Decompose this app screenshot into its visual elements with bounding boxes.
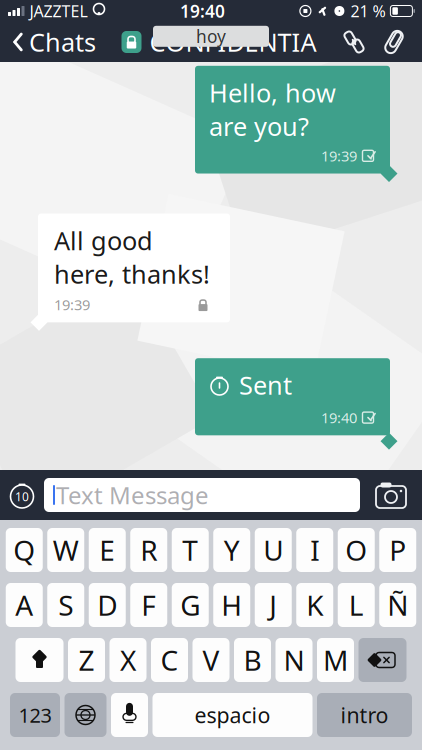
- button[interactable]: M: [317, 638, 354, 682]
- staticText: 19:39: [321, 146, 357, 166]
- staticText: S: [58, 586, 73, 624]
- staticText: 19:39: [54, 295, 90, 314]
- button[interactable]: Text Message: [44, 478, 360, 512]
- button[interactable]: Delete: [358, 638, 406, 682]
- button[interactable]: A: [6, 583, 43, 627]
- button[interactable]: V: [192, 638, 229, 682]
- button[interactable]: F: [130, 583, 167, 627]
- staticText: N: [283, 641, 304, 679]
- button[interactable]: O: [338, 528, 375, 572]
- button[interactable]: U: [255, 528, 292, 572]
- button[interactable]: K: [296, 583, 333, 627]
- staticText: Sent: [239, 368, 292, 402]
- staticText: JAZZTEL: [29, 0, 87, 22]
- staticText: P: [389, 531, 406, 569]
- staticText: B: [243, 641, 261, 679]
- button[interactable]: intro: [317, 693, 412, 737]
- staticText: X: [120, 641, 136, 679]
- staticText: L: [349, 586, 364, 624]
- button[interactable]: Y: [213, 528, 250, 572]
- button[interactable]: E: [89, 528, 126, 572]
- button[interactable]: J: [255, 583, 292, 627]
- staticText: D: [97, 586, 117, 624]
- staticText: O: [345, 531, 367, 569]
- staticText: 123: [18, 702, 51, 728]
- button[interactable]: G: [172, 583, 209, 627]
- staticText: 10: [15, 488, 29, 504]
- button[interactable]: R: [130, 528, 167, 572]
- button[interactable]: B: [234, 638, 271, 682]
- button[interactable]: Q: [6, 528, 43, 572]
- button[interactable]: N: [275, 638, 312, 682]
- staticText: intro: [340, 701, 388, 729]
- staticText: CONFIDENTIA: [149, 25, 316, 59]
- staticText: All good here, thanks!: [54, 224, 210, 291]
- button[interactable]: Z: [68, 638, 105, 682]
- button[interactable]: L: [338, 583, 375, 627]
- staticText: U: [263, 531, 283, 569]
- staticText: G: [180, 586, 200, 624]
- button[interactable]: C: [151, 638, 188, 682]
- staticText: W: [53, 531, 79, 569]
- staticText: E: [99, 531, 115, 569]
- button[interactable]: S: [47, 583, 84, 627]
- button[interactable]: Chats: [0, 22, 104, 62]
- staticText: T: [182, 531, 198, 569]
- staticText: Z: [78, 641, 94, 679]
- button[interactable]: H: [213, 583, 250, 627]
- staticText: C: [160, 641, 178, 679]
- staticText: M: [323, 641, 348, 679]
- button[interactable]: Ñ: [379, 583, 416, 627]
- staticText: J: [269, 586, 277, 624]
- button[interactable]: W: [47, 528, 84, 572]
- button[interactable]: X: [109, 638, 146, 682]
- staticText: Q: [13, 531, 35, 569]
- button[interactable]: Shift: [15, 638, 63, 682]
- staticText: I: [310, 531, 319, 569]
- staticText: 19:40: [321, 408, 357, 427]
- button[interactable]: Self-destruct timer: [0, 470, 44, 520]
- button[interactable]: Camera: [360, 470, 422, 520]
- button[interactable]: Dictation: [111, 693, 148, 737]
- staticText: Ñ: [387, 586, 408, 624]
- button[interactable]: I: [296, 528, 333, 572]
- button[interactable]: Next keyboard: [64, 693, 106, 737]
- button[interactable]: Attach: [374, 22, 414, 62]
- staticText: K: [306, 586, 323, 624]
- staticText: R: [140, 531, 157, 569]
- button[interactable]: D: [89, 583, 126, 627]
- button[interactable]: 123: [10, 693, 60, 737]
- staticText: V: [202, 641, 219, 679]
- staticText: Chats: [29, 25, 96, 59]
- button[interactable]: espacio: [152, 693, 312, 737]
- button[interactable]: P: [379, 528, 416, 572]
- button[interactable]: Call: [334, 22, 374, 62]
- staticText: H: [221, 586, 242, 624]
- staticText: F: [141, 586, 156, 624]
- staticText: hoy: [196, 25, 226, 48]
- staticText: A: [15, 586, 33, 624]
- staticText: espacio: [194, 701, 270, 729]
- staticText: 21 %: [350, 0, 385, 22]
- staticText: Text Message: [56, 479, 209, 511]
- button[interactable]: T: [172, 528, 209, 572]
- staticText: 19:40: [180, 0, 225, 22]
- staticText: Y: [224, 531, 240, 569]
- staticText: Hello, how are you?: [209, 76, 336, 143]
